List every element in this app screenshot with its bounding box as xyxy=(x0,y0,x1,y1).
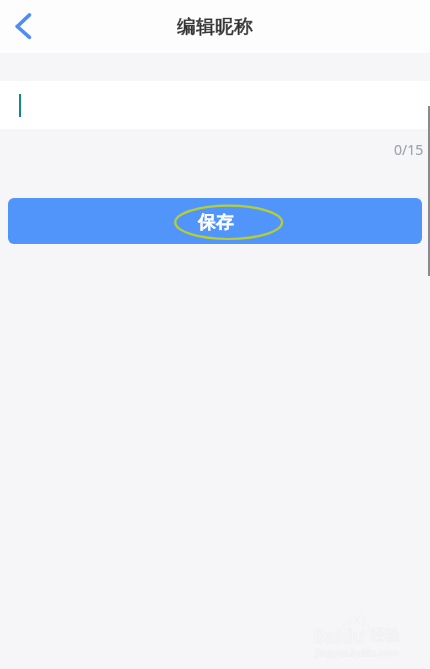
staticText: 保存 xyxy=(198,211,234,234)
button[interactable]: Back xyxy=(0,3,48,51)
staticText: 0/15 xyxy=(394,140,424,159)
staticText: 保存 xyxy=(198,211,234,234)
staticText: 编辑昵称 xyxy=(177,15,253,39)
staticText: 编辑昵称 xyxy=(177,15,253,39)
button[interactable] xyxy=(0,81,430,129)
button[interactable]: 保存 xyxy=(8,198,422,244)
